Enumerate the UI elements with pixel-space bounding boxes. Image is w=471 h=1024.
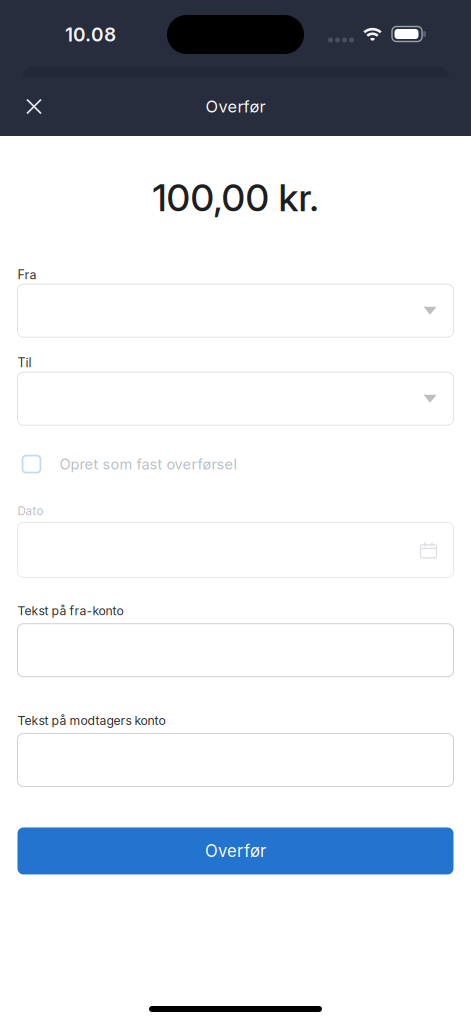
staticText: 10.08 [65, 23, 116, 46]
button[interactable]: Luk [13, 85, 55, 127]
staticText: Overfør [205, 841, 266, 861]
staticText: 100,00 kr. [152, 175, 318, 220]
staticText: Tekst på modtagers konto [17, 713, 165, 728]
staticText: Tekst på fra-konto [17, 603, 123, 618]
button[interactable]: Opret som fast overførsel [17, 447, 453, 481]
staticText: Fra [17, 267, 36, 282]
staticText: Overfør [205, 97, 265, 116]
button[interactable]: Tekst på fra-konto [17, 624, 453, 677]
staticText: Dato [17, 504, 43, 518]
staticText: Opret som fast overførsel [59, 455, 237, 473]
button[interactable]: Dato [17, 522, 453, 577]
button[interactable]: Fra konto [17, 284, 453, 337]
button[interactable]: Til konto [17, 372, 453, 425]
staticText: Til [17, 355, 31, 370]
button[interactable]: Overfør [17, 827, 453, 874]
